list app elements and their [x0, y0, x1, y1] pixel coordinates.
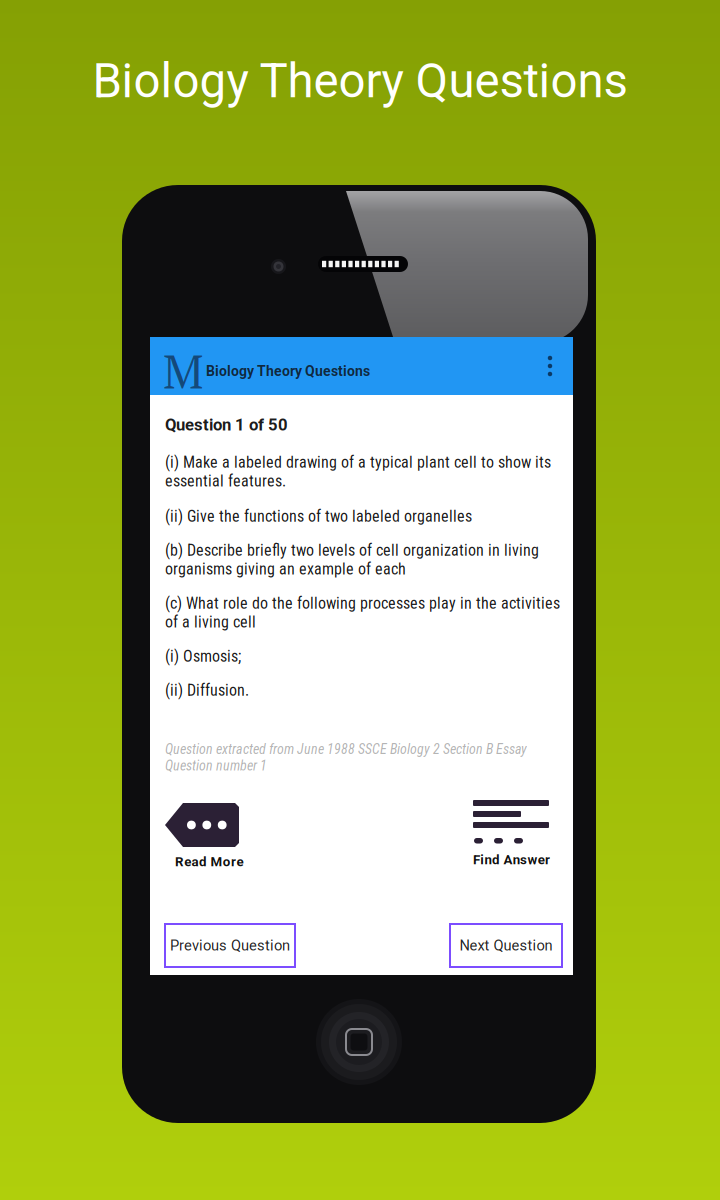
- staticText: Question 1 of 50: [165, 415, 288, 434]
- staticText: (ii) Give the functions of two labeled o…: [165, 507, 472, 526]
- staticText: Next Question: [459, 937, 552, 954]
- button[interactable]: Find Answer: [473, 799, 573, 874]
- button[interactable]: More options: [535, 337, 565, 395]
- staticText: Read More: [175, 854, 243, 870]
- staticText: Previous Question: [170, 937, 290, 954]
- staticText: M: [163, 340, 203, 402]
- staticText: (i) Make a labeled drawing of a typical …: [165, 453, 551, 490]
- button[interactable]: Next Question: [450, 924, 562, 967]
- staticText: Biology Theory Questions: [92, 53, 627, 109]
- staticText: Find Answer: [473, 852, 550, 868]
- staticText: Biology Theory Questions: [206, 363, 370, 379]
- staticText: Question extracted from June 1988 SSCE B…: [165, 741, 527, 774]
- staticText: (c) What role do the following processes…: [165, 594, 560, 631]
- staticText: (ii) Diffusion.: [165, 681, 249, 700]
- button[interactable]: Read More: [165, 801, 255, 876]
- staticText: (b) Describe briefly two levels of cell …: [165, 541, 539, 578]
- staticText: (i) Osmosis;: [165, 647, 241, 666]
- button[interactable]: Previous Question: [165, 924, 295, 967]
